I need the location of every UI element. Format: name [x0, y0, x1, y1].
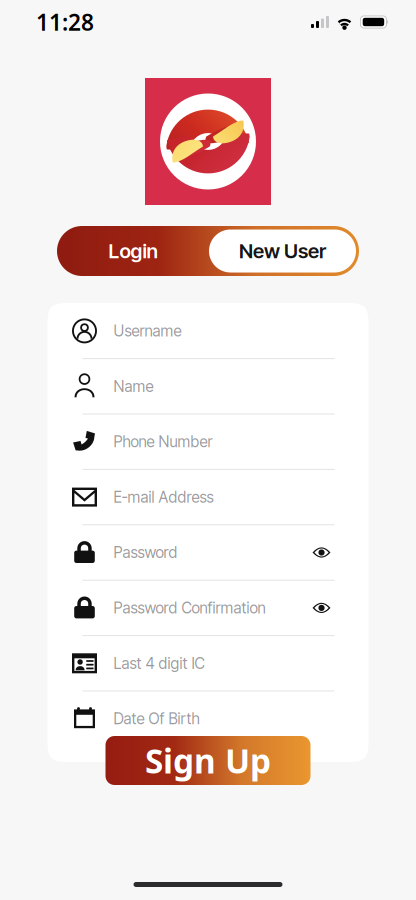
button[interactable]: Login: [57, 226, 209, 276]
button[interactable]: New User: [209, 229, 356, 272]
staticText: 11:28: [36, 7, 94, 37]
staticText: Username: [113, 322, 181, 340]
button[interactable]: Show Password: [301, 534, 341, 570]
staticText: Sign Up: [145, 738, 271, 783]
staticText: Password: [113, 543, 177, 562]
staticText: Date Of Birth: [113, 709, 199, 728]
staticText: Name: [113, 377, 153, 396]
staticText: New User: [239, 239, 326, 263]
staticText: Last 4 digit IC: [113, 654, 204, 673]
button[interactable]: Sign Up: [105, 736, 310, 785]
staticText: Login: [108, 239, 157, 263]
staticText: E-mail Address: [113, 488, 213, 506]
staticText: Phone Number: [113, 432, 212, 451]
button[interactable]: Show Password Confirmation: [301, 590, 341, 626]
staticText: Password Confirmation: [113, 599, 265, 617]
